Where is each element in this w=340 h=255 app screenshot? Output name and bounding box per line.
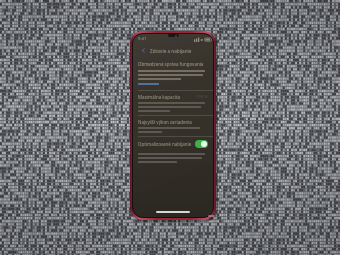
staticText: Zdravie a nabíjanie batérie bbox=[150, 48, 208, 54]
button[interactable] bbox=[138, 83, 159, 85]
button[interactable]: Optimalizované nabíjanie bbox=[133, 137, 213, 151]
staticText: 100 % bbox=[196, 94, 208, 100]
button[interactable]: Back bbox=[138, 45, 149, 56]
button[interactable]: Maximálna kapacita bbox=[133, 91, 213, 115]
staticText: Maximálna kapacita bbox=[138, 94, 181, 100]
staticText: Obmedzená správa fungovania batérie bbox=[138, 61, 208, 67]
other: Optimalizované nabíjanie, zapnuté bbox=[195, 140, 208, 148]
staticText: Optimalizované nabíjanie bbox=[138, 141, 192, 147]
button[interactable]: Najvyšší výkon zariadenia bbox=[133, 116, 213, 136]
staticText: 9:41 bbox=[138, 36, 147, 42]
staticText: Najvyšší výkon zariadenia bbox=[138, 119, 192, 125]
